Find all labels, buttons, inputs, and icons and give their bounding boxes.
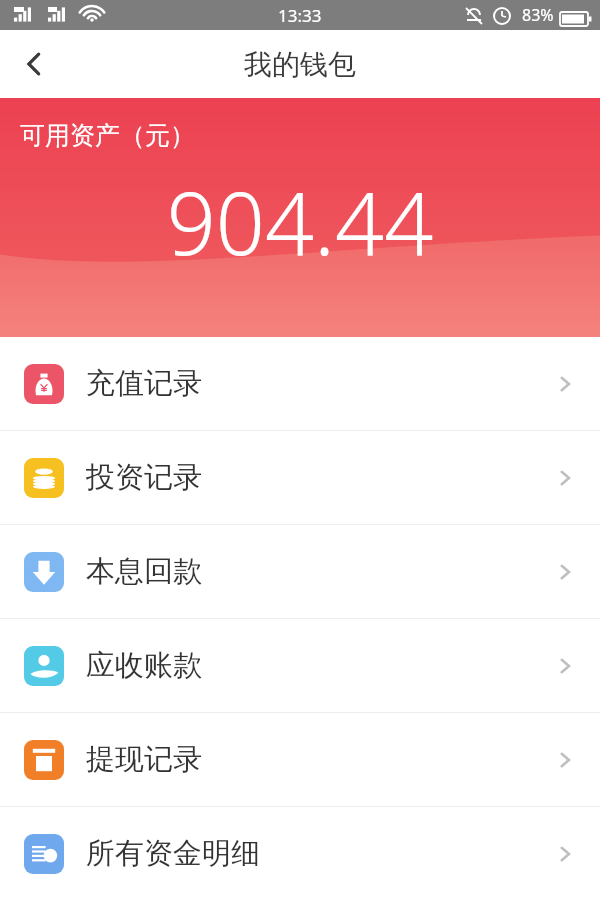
button[interactable]: 应收账款 bbox=[0, 619, 600, 712]
staticText: 904.44 bbox=[0, 163, 600, 280]
button[interactable]: 投资记录 bbox=[0, 431, 600, 524]
staticText: 83% bbox=[522, 4, 554, 26]
staticText: 应收账款 bbox=[86, 647, 202, 684]
staticText: 所有资金明细 bbox=[86, 835, 260, 872]
button[interactable]: Back bbox=[8, 38, 60, 90]
staticText: 本息回款 bbox=[86, 553, 202, 590]
button[interactable]: 提现记录 bbox=[0, 713, 600, 806]
staticText: 可用资产（元） bbox=[20, 120, 195, 151]
staticText: 充值记录 bbox=[86, 365, 202, 402]
button[interactable]: 所有资金明细 bbox=[0, 807, 600, 900]
staticText: 投资记录 bbox=[86, 459, 202, 496]
button[interactable]: 本息回款 bbox=[0, 525, 600, 618]
button[interactable]: 充值记录 bbox=[0, 337, 600, 430]
staticText: 提现记录 bbox=[86, 741, 202, 778]
staticText: 我的钱包 bbox=[244, 47, 356, 82]
staticText: 13:33 bbox=[278, 4, 322, 27]
